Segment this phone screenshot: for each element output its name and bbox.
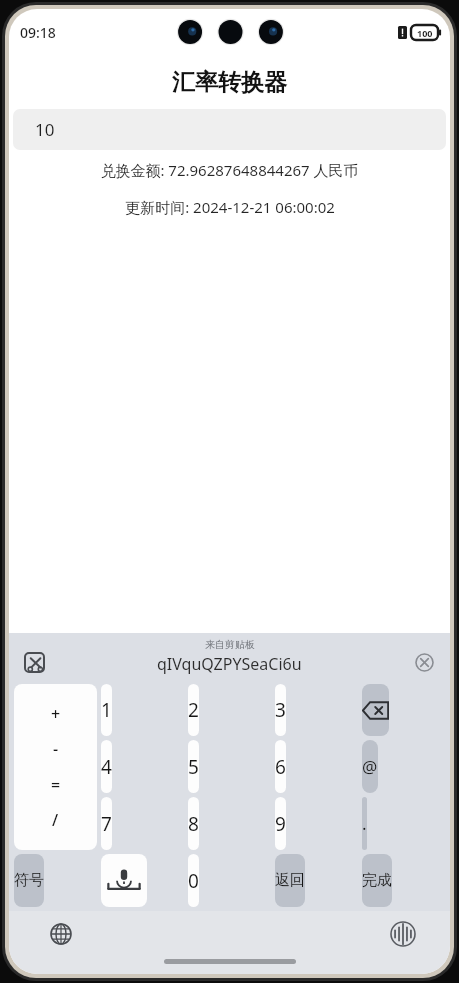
- button[interactable]: 完成: [362, 854, 392, 907]
- button[interactable]: 5: [188, 740, 199, 793]
- staticText: 1: [101, 697, 112, 723]
- button[interactable]: Dismiss clipboard: [408, 646, 440, 678]
- staticText: 兑换金额: 72.96287648844267 人民币: [100, 160, 359, 180]
- staticText: 9: [275, 811, 286, 837]
- staticText: /: [52, 809, 59, 831]
- button[interactable]: @: [362, 740, 378, 793]
- button[interactable]: 10: [13, 109, 446, 150]
- button[interactable]: Backspace: [362, 684, 389, 736]
- button[interactable]: .: [362, 797, 367, 850]
- staticText: @: [362, 755, 378, 778]
- staticText: 返回: [275, 871, 305, 890]
- staticText: 汇率转换器: [172, 68, 287, 97]
- staticText: =: [51, 774, 61, 796]
- button[interactable]: Operators: [14, 684, 97, 850]
- staticText: 0: [188, 868, 199, 894]
- button[interactable]: 2: [188, 684, 199, 736]
- button[interactable]: 0: [188, 854, 199, 907]
- staticText: 3: [275, 697, 286, 723]
- button[interactable]: 3: [275, 684, 286, 736]
- button[interactable]: 9: [275, 797, 286, 850]
- staticText: .: [362, 812, 367, 835]
- button[interactable]: 6: [275, 740, 286, 793]
- staticText: 8: [188, 811, 199, 837]
- staticText: 4: [101, 754, 112, 780]
- staticText: 7: [101, 811, 112, 837]
- staticText: 2: [188, 697, 199, 723]
- staticText: 5: [188, 754, 199, 780]
- button[interactable]: 符号: [14, 854, 44, 907]
- staticText: -: [53, 738, 59, 760]
- staticText: +: [51, 703, 61, 725]
- staticText: 来自剪贴板: [205, 638, 255, 651]
- button[interactable]: Voice typing: [386, 917, 420, 951]
- button[interactable]: 1: [101, 684, 112, 736]
- staticText: 6: [275, 754, 286, 780]
- button[interactable]: 7: [101, 797, 112, 850]
- button[interactable]: 8: [188, 797, 199, 850]
- staticText: qIVquQZPYSeaCi6u: [157, 653, 302, 675]
- staticText: 10: [35, 118, 55, 141]
- button[interactable]: Change language: [45, 918, 77, 950]
- staticText: 100: [417, 27, 433, 39]
- button[interactable]: Voice input: [101, 854, 147, 907]
- button[interactable]: Clipboard: [17, 645, 51, 679]
- staticText: 更新时间: 2024-12-21 06:00:02: [125, 197, 335, 217]
- staticText: 符号: [14, 871, 44, 890]
- button[interactable]: 4: [101, 740, 112, 793]
- staticText: 完成: [362, 871, 392, 890]
- staticText: 09:18: [20, 23, 56, 42]
- button[interactable]: 返回: [275, 854, 305, 907]
